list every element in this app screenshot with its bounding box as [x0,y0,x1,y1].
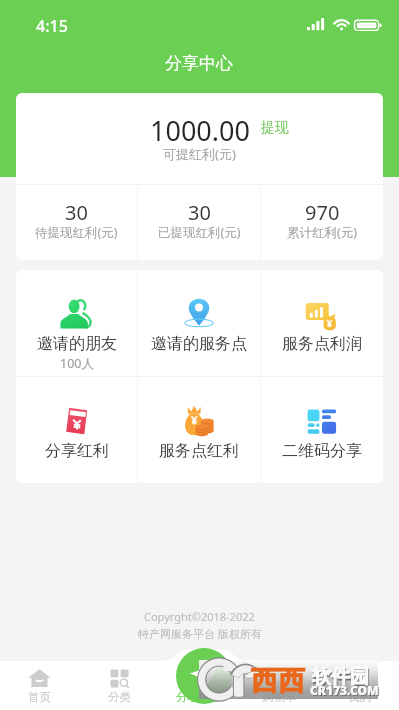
staticText: 待提现红利(元) [35,224,118,241]
staticText: 分享中心 [176,690,222,704]
staticText: 服务点红利 [159,441,239,461]
staticText: 特产网服务平台 版权所有 [138,626,262,641]
button[interactable]: 30 [138,185,260,260]
button[interactable]: 分享中心 [159,661,239,710]
staticText: 可提红利(元) [163,145,236,163]
button[interactable]: 分享红利 [16,377,137,483]
staticText: 西西 [251,664,305,698]
button[interactable]: 分享中心 [176,648,232,704]
staticText: 30 [65,199,88,226]
staticText: 提现 [261,119,289,137]
staticText: 服务点利润 [282,334,362,354]
staticText: 1000.00 [150,112,250,149]
staticText: 分类 [108,690,131,704]
staticText: 970 [305,199,340,226]
staticText: 二维码分享 [282,441,362,461]
staticText: 100人 [60,355,94,372]
staticText: 30 [188,199,211,226]
staticText: 软件园 [312,665,369,689]
staticText: CR173.COM [310,682,379,698]
button[interactable]: 邀请的朋友 [16,270,137,376]
button[interactable]: 二维码分享 [261,377,383,483]
button[interactable]: 购物车 [239,661,319,710]
button[interactable]: 邀请的服务点 [138,270,260,376]
staticText: 邀请的服务点 [151,334,247,354]
button[interactable]: 首页 [0,661,79,710]
staticText: 软件园 [313,667,370,691]
button[interactable]: 提现 [261,119,289,137]
button[interactable]: 30 [16,185,137,260]
staticText: 分享红利 [45,441,109,461]
staticText: 购物车 [262,690,297,704]
staticText: 首页 [28,690,51,704]
staticText: 已提现红利(元) [158,224,241,241]
staticText: Copyrght©2018-2022 [144,609,255,624]
button[interactable]: 970 [261,185,383,260]
button[interactable]: 服务点利润 [261,270,383,376]
staticText: 邀请的朋友 [37,334,117,354]
staticText: 分享中心 [165,53,233,74]
button[interactable]: 我的 [319,661,399,710]
staticText: 4:15 [36,15,68,37]
button[interactable]: 分类 [79,661,159,710]
staticText: 累计红利(元) [287,224,358,241]
staticText: CR173.COM [311,683,380,699]
button[interactable]: 服务点红利 [138,377,260,483]
staticText: 我的 [348,690,371,704]
